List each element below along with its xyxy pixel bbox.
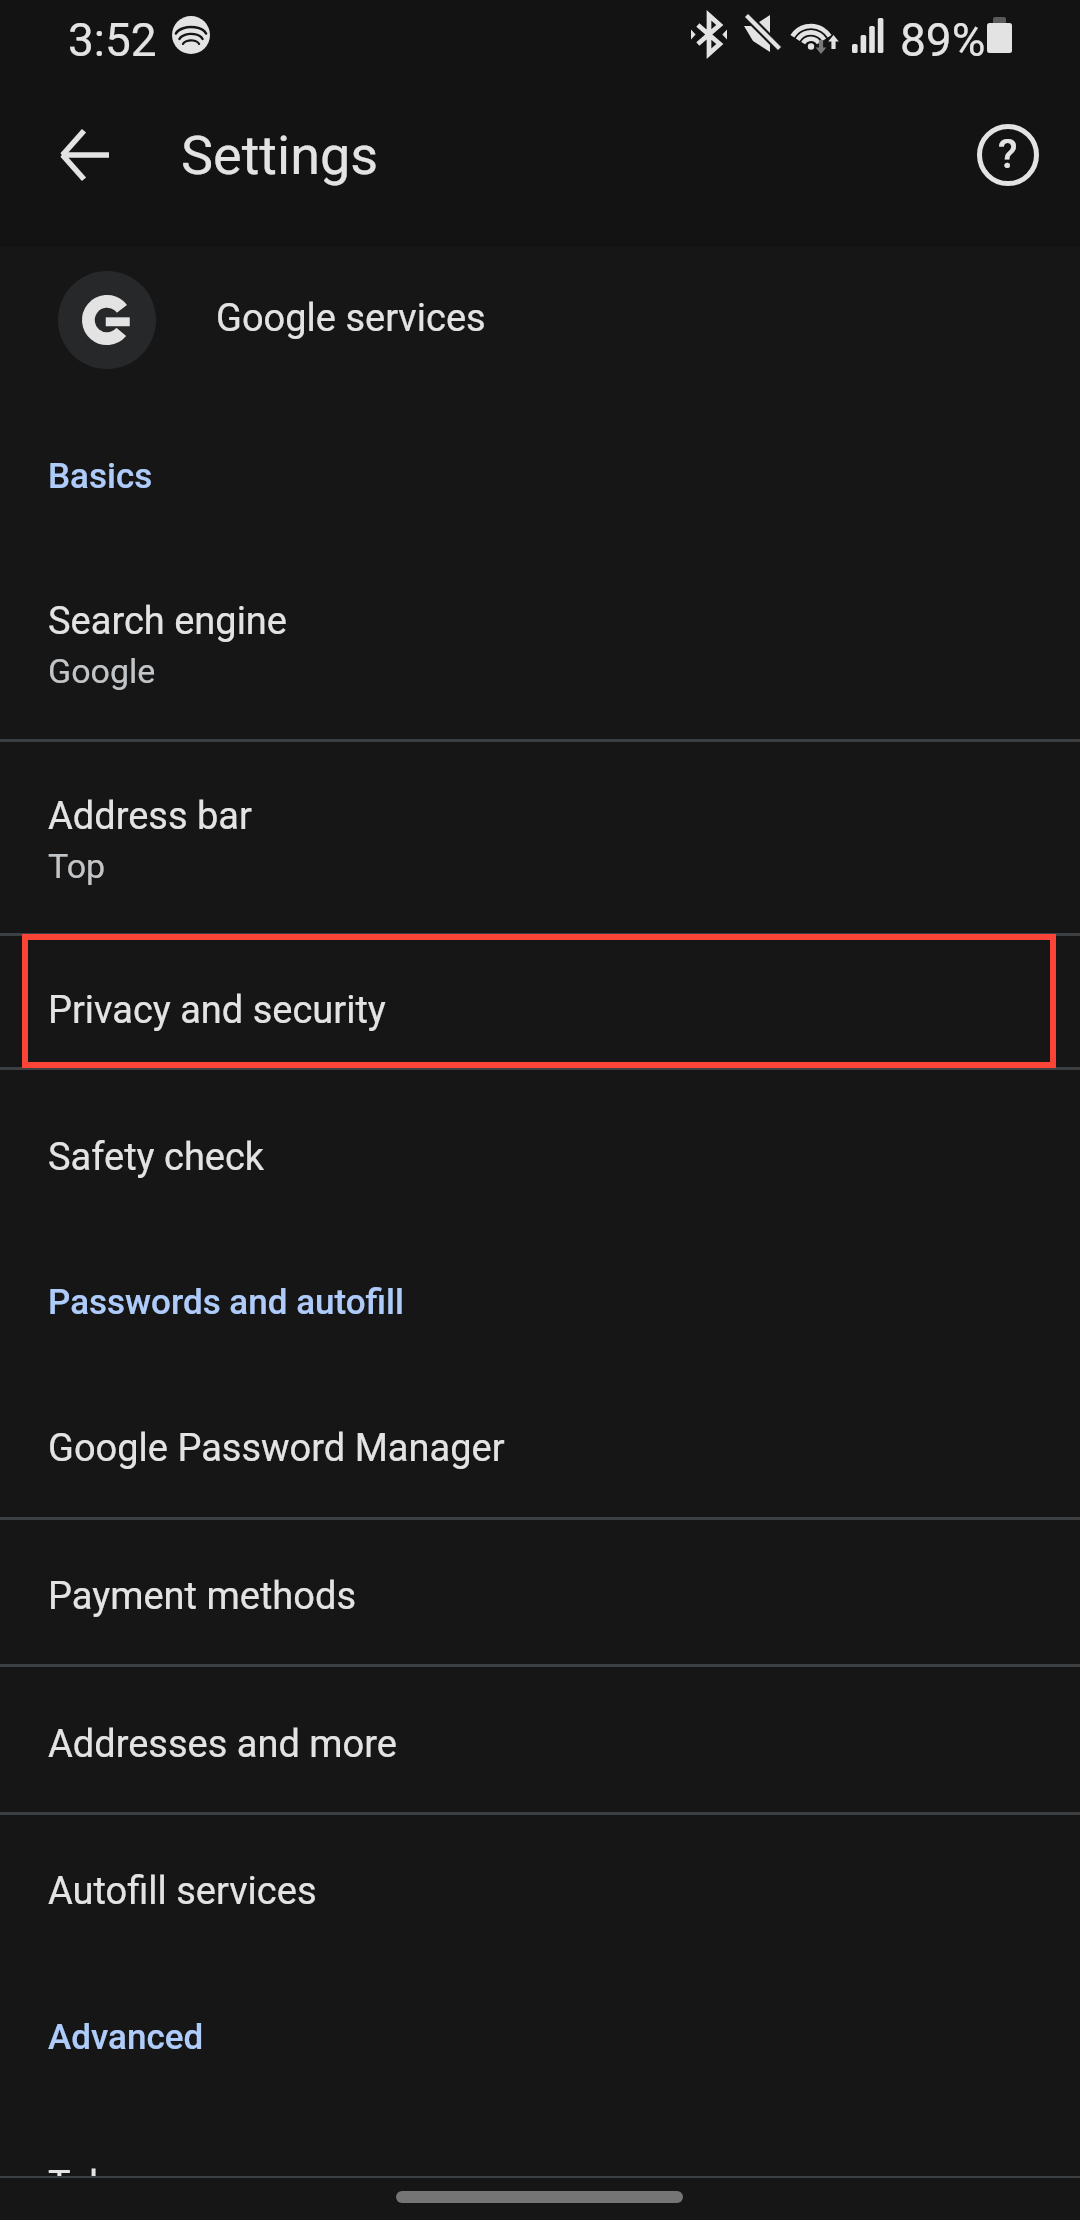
staticText: Payment methods xyxy=(48,1574,357,1619)
button[interactable]: Autofill services xyxy=(0,1813,1080,1960)
button[interactable]: Safety check xyxy=(0,1068,1080,1222)
button[interactable]: Back xyxy=(36,107,132,203)
staticText: Safety check xyxy=(48,1135,265,1180)
button[interactable]: Addresses and more xyxy=(0,1665,1080,1813)
button[interactable]: Help xyxy=(960,107,1056,203)
button[interactable]: Search engine xyxy=(0,560,1080,740)
staticText: Google xyxy=(48,651,156,691)
staticText: Privacy and security xyxy=(48,988,386,1033)
button[interactable]: Address bar xyxy=(0,740,1080,934)
staticText: Passwords and autofill xyxy=(48,1282,404,1323)
staticText: Google services xyxy=(216,296,486,341)
staticText: ? xyxy=(998,131,1018,178)
button[interactable]: Google Password Manager xyxy=(0,1368,1080,1518)
staticText: Settings xyxy=(181,124,379,187)
staticText: 89% xyxy=(900,13,986,67)
staticText: Tabs xyxy=(48,2163,131,2208)
staticText: Advanced xyxy=(48,2017,204,2058)
staticText: Basics xyxy=(48,456,153,497)
button[interactable]: Payment methods xyxy=(0,1518,1080,1665)
button[interactable]: Tabs xyxy=(0,2110,1080,2220)
button[interactable]: Privacy and security xyxy=(0,934,1080,1068)
staticText: Autofill services xyxy=(48,1869,317,1914)
staticText: Addresses and more xyxy=(48,1722,397,1767)
staticText: Address bar xyxy=(48,794,252,839)
staticText: Search engine xyxy=(48,599,288,644)
staticText: Google Password Manager xyxy=(48,1426,505,1471)
staticText: 3:52 xyxy=(68,13,157,67)
staticText: Top xyxy=(48,846,106,886)
button[interactable]: Google services xyxy=(0,255,1080,385)
